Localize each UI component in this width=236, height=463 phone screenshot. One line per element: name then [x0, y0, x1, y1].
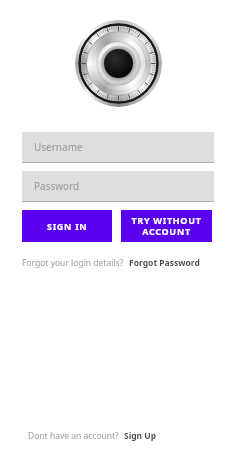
button[interactable]: Sign Up — [124, 430, 157, 442]
staticText: Sign Up — [124, 430, 157, 442]
staticText: Forgot your login details? — [22, 257, 124, 269]
button[interactable]: SIGN IN — [22, 210, 112, 242]
staticText: Password — [34, 179, 80, 193]
button[interactable]: Forgot Password — [129, 257, 200, 269]
staticText: TRY WITHOUT ACCOUNT — [131, 214, 202, 238]
button[interactable]: Password — [22, 171, 214, 202]
button[interactable]: Username — [22, 132, 214, 163]
staticText: Username — [34, 140, 83, 154]
staticText: Dont have an account? — [28, 430, 119, 442]
staticText: Forgot Password — [129, 257, 200, 269]
staticText: SIGN IN — [47, 220, 88, 232]
button[interactable]: TRY WITHOUT ACCOUNT — [121, 210, 212, 242]
other: App logo: combination lock dial — [74, 19, 163, 108]
